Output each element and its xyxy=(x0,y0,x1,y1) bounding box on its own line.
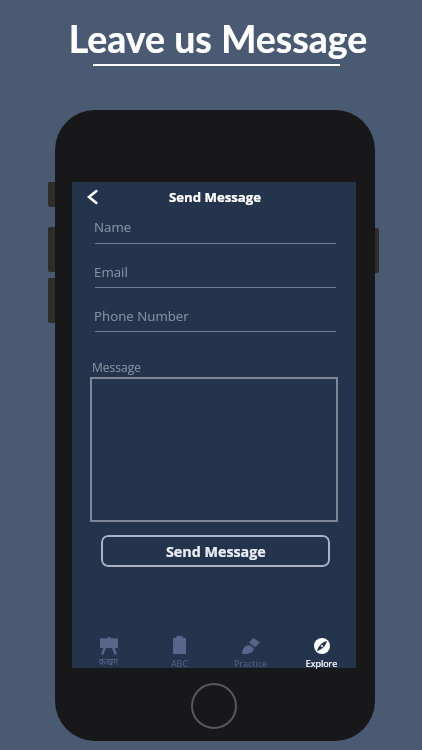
staticText: ABC xyxy=(144,657,215,669)
button[interactable]: Back xyxy=(86,188,99,206)
staticText: Leave us Message xyxy=(7,16,422,61)
staticText: कखग xyxy=(73,657,144,669)
button[interactable]: Explore xyxy=(285,624,356,654)
staticText: Practice xyxy=(215,657,286,669)
staticText: Send Message xyxy=(73,188,357,206)
button[interactable]: Send Message xyxy=(101,535,330,567)
button[interactable]: ABC xyxy=(143,624,214,654)
button[interactable]: कखग xyxy=(72,624,143,654)
staticText: Email xyxy=(94,263,128,281)
staticText: Explore xyxy=(286,657,357,669)
staticText: Send Message xyxy=(166,542,266,561)
staticText: Name xyxy=(94,218,132,236)
staticText: Message xyxy=(92,359,141,375)
button[interactable]: Practice xyxy=(214,624,285,654)
staticText: Phone Number xyxy=(94,307,189,325)
button[interactable] xyxy=(90,377,338,522)
button[interactable]: Home xyxy=(191,683,237,729)
